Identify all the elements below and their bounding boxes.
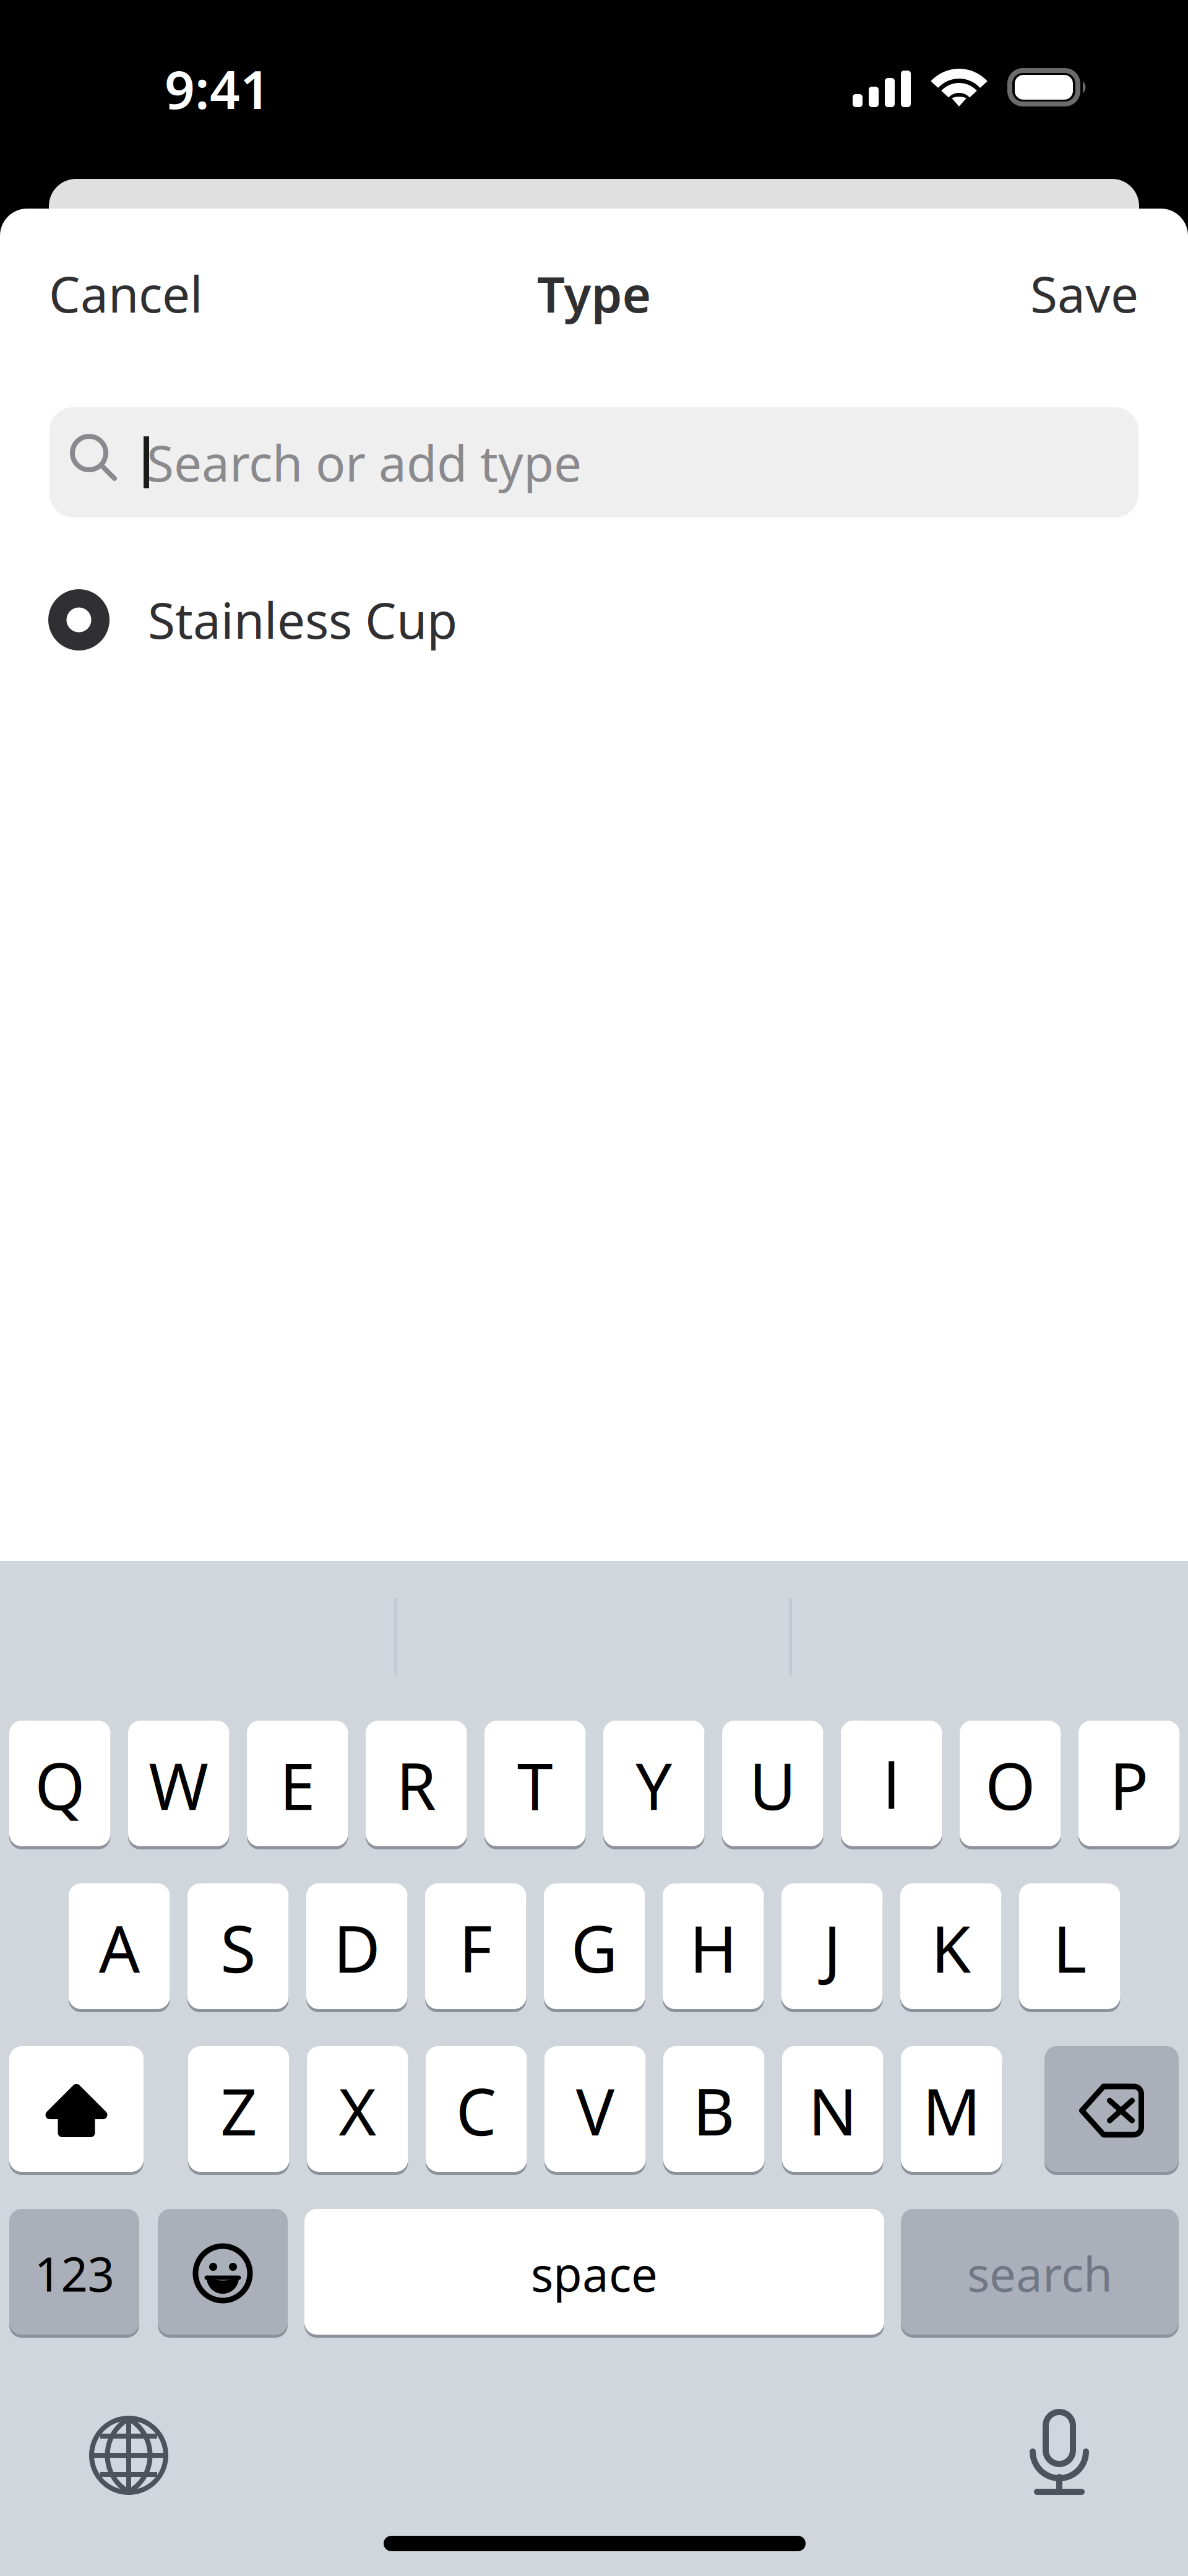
button[interactable] [841, 1721, 942, 1849]
button[interactable]: Next keyboard [88, 2415, 169, 2496]
staticText: F [459, 1905, 492, 1990]
staticText: D [333, 1905, 380, 1990]
button[interactable]: 123 [9, 2209, 139, 2338]
button[interactable]: Emoji [158, 2209, 288, 2338]
button[interactable]: Z [188, 2046, 289, 2175]
staticText: search [967, 2242, 1113, 2305]
button[interactable]: B [663, 2046, 764, 2175]
staticText: W [149, 1742, 209, 1828]
staticText: K [931, 1905, 971, 1990]
button[interactable]: R [366, 1721, 467, 1849]
staticText: S [220, 1905, 256, 1990]
button[interactable]: Y [603, 1721, 704, 1849]
button[interactable]: U [722, 1721, 823, 1849]
button[interactable]: X [307, 2046, 408, 2175]
staticText: H [689, 1905, 737, 1990]
staticText: O [985, 1742, 1035, 1828]
staticText: L [1053, 1905, 1086, 1990]
staticText: C [456, 2068, 497, 2153]
button[interactable]: J [781, 1883, 883, 2012]
staticText: 123 [34, 2242, 114, 2305]
button[interactable]: C [426, 2046, 527, 2175]
button[interactable]: search [901, 2209, 1179, 2338]
staticText: J [823, 1905, 841, 1990]
button[interactable]: Dictate [1031, 2407, 1088, 2499]
staticText: Search or add type [147, 429, 582, 495]
button[interactable]: A [69, 1883, 170, 2012]
button[interactable]: Cancel [49, 244, 247, 343]
staticText: U [749, 1742, 796, 1828]
staticText: P [1110, 1742, 1149, 1828]
button[interactable]: H [663, 1883, 764, 2012]
staticText: A [99, 1905, 140, 1990]
staticText: Y [636, 1742, 672, 1828]
button[interactable]: S [187, 1883, 289, 2012]
staticText: M [922, 2068, 981, 2153]
staticText: Z [220, 2068, 257, 2153]
button[interactable]: T [484, 1721, 586, 1849]
staticText: V [576, 2068, 614, 2153]
staticText: Q [35, 1742, 85, 1828]
staticText: Save [1030, 261, 1138, 326]
staticText: Stainless Cup [148, 587, 457, 652]
staticText: R [396, 1742, 436, 1828]
staticText: Type [537, 261, 651, 326]
staticText: T [517, 1742, 553, 1828]
button[interactable]: V [544, 2046, 646, 2175]
staticText: X [339, 2068, 376, 2153]
staticText: E [280, 1742, 315, 1828]
button[interactable]: K [900, 1883, 1001, 2012]
button[interactable]: N [782, 2046, 883, 2175]
button[interactable]: Save [940, 244, 1138, 343]
button[interactable]: L [1019, 1883, 1120, 2012]
button[interactable]: O [960, 1721, 1061, 1849]
button[interactable]: Stainless Cup [0, 570, 1188, 669]
button[interactable]: space [304, 2209, 884, 2338]
staticText: G [571, 1905, 618, 1990]
button[interactable]: F [425, 1883, 526, 2012]
button[interactable]: Shift [9, 2046, 144, 2175]
staticText: B [693, 2068, 735, 2153]
button[interactable]: M [901, 2046, 1002, 2175]
staticText: 9:41 [165, 53, 270, 124]
button[interactable]: P [1078, 1721, 1180, 1849]
button[interactable]: Q [9, 1721, 110, 1849]
button[interactable]: G [544, 1883, 645, 2012]
staticText: N [808, 2068, 857, 2153]
button[interactable]: W [128, 1721, 229, 1849]
button[interactable]: Delete [1044, 2046, 1179, 2175]
staticText: Cancel [49, 261, 203, 326]
button[interactable]: E [247, 1721, 348, 1849]
staticText: space [531, 2242, 658, 2305]
button[interactable]: D [306, 1883, 407, 2012]
